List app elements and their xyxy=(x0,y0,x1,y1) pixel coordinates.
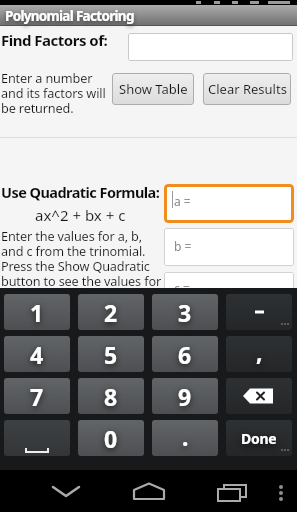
staticText: 0 xyxy=(104,423,118,454)
button[interactable]: Polynomial Factoring xyxy=(0,5,297,26)
staticText: 3 xyxy=(178,297,192,328)
button[interactable]: Clear Results xyxy=(203,73,291,105)
button[interactable]: 9 xyxy=(152,378,218,414)
staticText: 7 xyxy=(30,381,44,412)
button[interactable]: 3 xyxy=(152,294,218,330)
button[interactable]: . xyxy=(152,420,218,456)
button[interactable]: 0 xyxy=(78,420,144,456)
staticText: Clear Results xyxy=(208,80,287,98)
staticText: Done xyxy=(241,429,277,448)
staticText: b = xyxy=(174,238,192,254)
button[interactable]: 1 xyxy=(4,294,70,330)
button[interactable] xyxy=(268,470,297,512)
button[interactable]: 8 xyxy=(78,378,144,414)
staticText: Enter the values for a, b, and c from th… xyxy=(1,227,162,290)
button[interactable]: 5 xyxy=(78,336,144,372)
staticText: 4 xyxy=(30,339,44,370)
button[interactable]: 2 xyxy=(78,294,144,330)
button[interactable] xyxy=(128,33,293,61)
button[interactable] xyxy=(123,470,175,512)
staticText: Find Factors of: xyxy=(1,30,108,50)
staticText: c = xyxy=(174,280,190,296)
staticText: , xyxy=(256,336,263,367)
button[interactable] xyxy=(226,378,292,414)
button[interactable]: b = xyxy=(164,228,294,266)
button[interactable] xyxy=(205,470,257,512)
staticText: Enter a number and its factors will be r… xyxy=(1,69,106,117)
button[interactable]: Show Table xyxy=(112,73,194,105)
staticText: Show Table xyxy=(119,80,188,98)
staticText: Polynomial Factoring xyxy=(5,7,134,25)
button[interactable] xyxy=(226,294,292,330)
staticText: 8 xyxy=(104,381,118,412)
staticText: a = xyxy=(174,193,191,209)
staticText: 5 xyxy=(104,339,118,370)
button[interactable]: , xyxy=(226,336,292,372)
staticText: 6 xyxy=(178,339,192,370)
staticText: . xyxy=(182,421,189,452)
staticText: ax^2 + bx + c xyxy=(35,205,126,225)
button[interactable]: a = xyxy=(164,184,294,223)
staticText: 2 xyxy=(104,297,118,328)
button[interactable]: 4 xyxy=(4,336,70,372)
button[interactable]: 7 xyxy=(4,378,70,414)
staticText: 1 xyxy=(30,297,44,328)
button[interactable] xyxy=(40,470,92,512)
staticText: 9 xyxy=(178,381,192,412)
button[interactable] xyxy=(4,420,70,456)
staticText: Use Quadratic Formula: xyxy=(1,182,160,202)
button[interactable]: 6 xyxy=(152,336,218,372)
button[interactable]: Done xyxy=(226,420,292,456)
